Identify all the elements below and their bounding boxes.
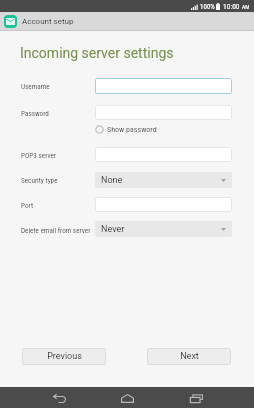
staticText: Show password: [107, 125, 157, 134]
button[interactable]: None: [95, 172, 232, 188]
staticText: Account setup: [22, 17, 74, 26]
staticText: None: [101, 175, 123, 186]
staticText: Security type: [21, 176, 58, 184]
staticText: 10:00: [223, 2, 240, 11]
staticText: Next: [180, 351, 199, 362]
button[interactable]: Previous: [22, 348, 106, 365]
staticText: Delete email from server: [21, 226, 91, 234]
staticText: Previous: [47, 351, 82, 362]
button[interactable]: Never: [95, 221, 232, 237]
button[interactable]: [95, 197, 232, 212]
staticText: AM: [242, 4, 250, 10]
button[interactable]: Show password: [95, 125, 157, 134]
staticText: Password: [21, 109, 49, 117]
staticText: Incoming server settings: [20, 45, 174, 61]
button[interactable]: Next: [147, 348, 231, 365]
staticText: POP3 server: [21, 151, 56, 159]
staticText: Port: [21, 201, 34, 209]
button[interactable]: [95, 147, 232, 162]
staticText: Username: [21, 82, 50, 90]
button[interactable]: Back: [45, 387, 73, 408]
button[interactable]: Home: [113, 387, 141, 408]
button[interactable]: [95, 78, 232, 94]
staticText: Never: [101, 224, 125, 235]
button[interactable]: Back: [45, 387, 254, 408]
button[interactable]: Account setup: [0, 12, 254, 31]
staticText: 100%: [200, 3, 215, 11]
button[interactable]: Recent apps: [182, 387, 210, 408]
button[interactable]: [95, 105, 232, 120]
